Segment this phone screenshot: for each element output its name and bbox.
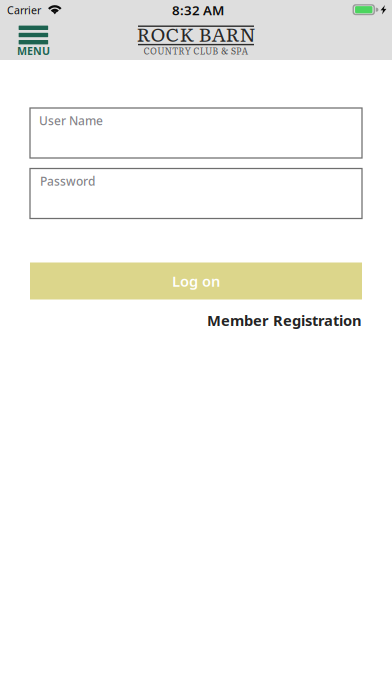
- staticText: Log on: [172, 271, 220, 291]
- staticText: MENU: [17, 44, 50, 58]
- staticText: User Name: [39, 112, 103, 128]
- staticText: Password: [40, 173, 95, 189]
- button[interactable]: Member Registration: [207, 310, 362, 330]
- staticText: Member Registration: [207, 310, 362, 330]
- staticText: COUNTRY CLUB & SPA: [143, 45, 248, 57]
- button[interactable]: Log on: [30, 262, 362, 299]
- staticText: Carrier: [7, 3, 41, 17]
- button[interactable]: Menu: [11, 21, 55, 57]
- staticText: 8:32 AM: [172, 1, 224, 19]
- staticText: ROCK BARN: [136, 19, 255, 48]
